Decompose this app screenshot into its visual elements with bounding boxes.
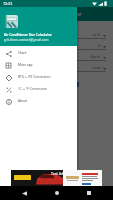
button[interactable]: About <box>0 95 77 107</box>
staticText: BTU ↔ RT Conversion <box>18 75 51 79</box>
staticText: Air Conditioner Size Calculator <box>16 11 82 17</box>
staticText: Share <box>18 51 27 55</box>
staticText: sq ft <box>92 32 101 37</box>
button[interactable]: BTU ↔ RT Conversion <box>0 71 77 83</box>
button[interactable]: CALCULATE <box>6 82 79 87</box>
staticText: °C ↔ °F Conversion <box>18 87 47 91</box>
staticText: ft <box>98 43 101 48</box>
button[interactable]: Recents <box>81 186 97 200</box>
button[interactable]: Back <box>16 186 32 200</box>
staticText: Air Conditioner Size Calculator <box>4 32 52 36</box>
staticText: grit.tham.contact@gmail.com <box>4 38 49 42</box>
button[interactable]: Share <box>0 47 77 59</box>
staticText: Test Ad <box>51 171 64 176</box>
button[interactable]: Home <box>49 186 65 200</box>
staticText: More app <box>18 63 33 67</box>
button[interactable]: Advertisement <box>11 170 102 186</box>
staticText: Ceiling Height <box>6 43 33 48</box>
staticText: Good <box>90 54 101 59</box>
staticText: Sun Exposure <box>6 65 32 70</box>
staticText: About <box>18 99 28 103</box>
staticText: Low <box>93 65 101 70</box>
button[interactable]: °C ↔ °F Conversion <box>0 83 77 95</box>
staticText: Room Area <box>6 32 27 37</box>
staticText: 12:32 <box>3 1 13 6</box>
button[interactable]: More app <box>0 59 77 71</box>
staticText: Insulation <box>6 54 25 59</box>
